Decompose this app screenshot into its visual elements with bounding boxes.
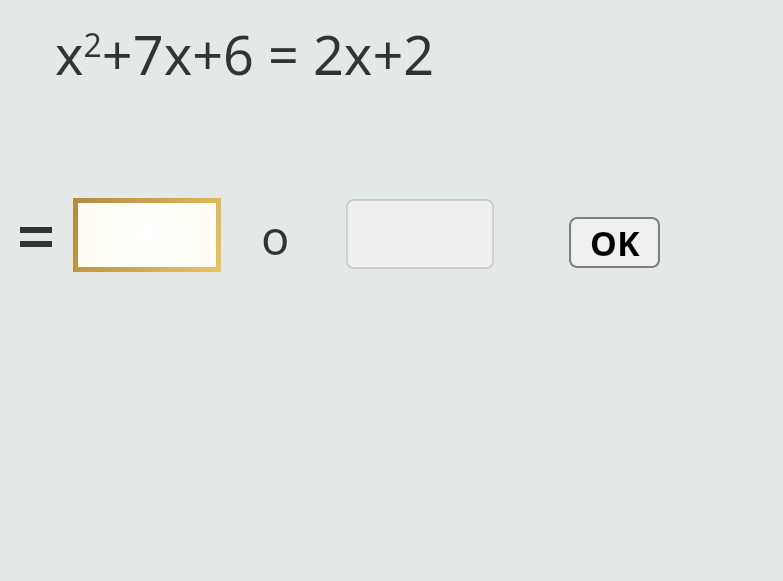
staticText: o	[261, 205, 290, 269]
button[interactable]: OK	[569, 217, 660, 268]
button[interactable]: Answer field, focused	[73, 198, 221, 272]
button[interactable]: Second answer field	[346, 199, 494, 269]
staticText: OK	[590, 220, 640, 266]
staticText: x2+7x+6 = 2x+2	[55, 17, 435, 91]
